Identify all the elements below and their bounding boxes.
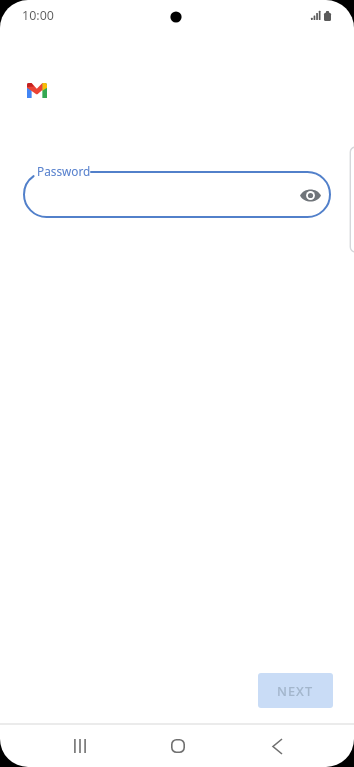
staticText: Password (37, 163, 91, 179)
button[interactable]: Back (253, 724, 301, 767)
button[interactable]: Home (154, 724, 202, 767)
staticText: 10:00 (22, 7, 54, 24)
button[interactable]: Password (23, 171, 331, 218)
staticText: NEXT (277, 682, 314, 699)
button[interactable]: Show password (296, 181, 324, 209)
button[interactable]: NEXT (258, 673, 333, 708)
button[interactable]: Recent apps (56, 724, 104, 767)
